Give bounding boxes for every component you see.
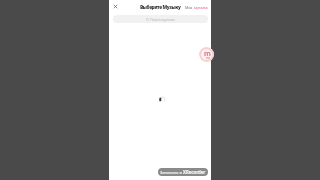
- button[interactable]: Close: [111, 2, 120, 11]
- staticText: Записано в: [160, 170, 183, 175]
- staticText: m: [204, 49, 211, 59]
- button[interactable]: Моя: [185, 5, 208, 10]
- staticText: Моя: [185, 5, 193, 10]
- staticText: ru: [206, 56, 210, 60]
- staticText: музыка: [194, 5, 208, 10]
- staticText: Поиск музыки: [150, 17, 175, 22]
- staticText: Выберите Музыку: [140, 4, 181, 11]
- staticText: XRecorder: [183, 169, 206, 175]
- button[interactable]: Open music app: [199, 47, 214, 62]
- button[interactable]: Поиск музыки: [113, 15, 208, 23]
